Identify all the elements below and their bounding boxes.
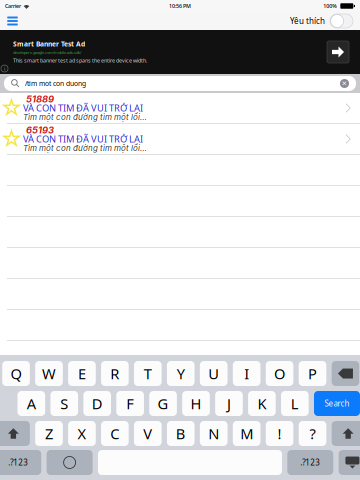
button[interactable]: Yêu thích bbox=[290, 12, 360, 30]
button[interactable]: Shift bbox=[332, 421, 360, 446]
staticText: J bbox=[227, 394, 231, 413]
staticText: Y bbox=[177, 364, 185, 383]
staticText: X bbox=[77, 424, 86, 443]
staticText: 51889 bbox=[26, 93, 54, 105]
button[interactable]: Q bbox=[2, 361, 30, 386]
button[interactable]: O bbox=[266, 361, 293, 386]
button[interactable]: ? bbox=[299, 421, 326, 446]
staticText: Carrier bbox=[5, 2, 21, 10]
staticText: O bbox=[274, 364, 285, 383]
staticText: T bbox=[144, 364, 152, 383]
button[interactable]: C bbox=[101, 421, 129, 446]
staticText: U bbox=[208, 364, 219, 383]
button[interactable]: Smart Banner Test Ad bbox=[0, 30, 360, 74]
button[interactable]: F bbox=[116, 391, 144, 416]
staticText: 100% bbox=[323, 2, 337, 10]
staticText: .?123 bbox=[300, 457, 320, 468]
staticText: F bbox=[126, 394, 134, 413]
button[interactable]: N bbox=[200, 421, 227, 446]
button[interactable]: V bbox=[134, 421, 162, 446]
staticText: W bbox=[42, 364, 56, 383]
staticText: N bbox=[208, 424, 219, 443]
button[interactable]: E bbox=[68, 361, 96, 386]
button[interactable]: B bbox=[167, 421, 195, 446]
staticText: P bbox=[308, 364, 317, 383]
staticText: Tìm một con đường tìm một lối… bbox=[23, 112, 147, 122]
staticText: Z bbox=[45, 424, 53, 443]
staticText: i bbox=[4, 65, 5, 72]
staticText: developers.google.com/mobile-ads-sdk/ bbox=[13, 50, 81, 55]
button[interactable]: J bbox=[215, 391, 243, 416]
staticText: I bbox=[244, 364, 249, 383]
staticText: 10:56 PM bbox=[169, 2, 191, 10]
button[interactable]: Next keyboard bbox=[47, 450, 93, 475]
staticText: D bbox=[92, 394, 103, 413]
staticText: ! bbox=[278, 424, 282, 443]
staticText: VÀ CON TIM ĐÃ VUI TRỞ LẠI bbox=[23, 102, 143, 114]
staticText: Tìm một con đường tìm một lối… bbox=[23, 143, 147, 153]
staticText: Search bbox=[324, 398, 349, 409]
staticText: 65193 bbox=[26, 124, 54, 136]
button[interactable]: .?123 bbox=[287, 450, 333, 475]
button[interactable]: D bbox=[83, 391, 111, 416]
staticText: L bbox=[291, 394, 299, 413]
button[interactable]: R bbox=[101, 361, 129, 386]
button[interactable]: M bbox=[233, 421, 260, 446]
button[interactable]: .?123 bbox=[0, 450, 41, 475]
button[interactable]: L bbox=[281, 391, 309, 416]
button[interactable]: Y bbox=[167, 361, 194, 386]
button[interactable]: ! bbox=[266, 421, 293, 446]
staticText: G bbox=[158, 394, 169, 413]
staticText: C bbox=[110, 424, 119, 443]
button[interactable]: Z bbox=[35, 421, 63, 446]
button[interactable]: P bbox=[299, 361, 326, 386]
button[interactable]: Menu bbox=[0, 12, 25, 30]
staticText: ✕ bbox=[341, 80, 347, 87]
button[interactable]: X bbox=[68, 421, 96, 446]
staticText: A bbox=[27, 394, 36, 413]
staticText: Smart Banner Test Ad bbox=[13, 40, 85, 48]
staticText: K bbox=[257, 394, 266, 413]
button[interactable]: Shift bbox=[0, 421, 30, 446]
button[interactable]: H bbox=[182, 391, 210, 416]
button[interactable]: Delete bbox=[332, 361, 359, 386]
staticText: V bbox=[143, 424, 152, 443]
button[interactable]: U bbox=[200, 361, 227, 386]
button[interactable]: Search bbox=[314, 391, 360, 416]
staticText: R bbox=[110, 364, 119, 383]
button[interactable]: I bbox=[233, 361, 260, 386]
button[interactable]: Clear search bbox=[340, 79, 349, 88]
button[interactable]: G bbox=[149, 391, 177, 416]
button[interactable]: Dismiss keyboard bbox=[339, 450, 360, 475]
button[interactable]: A bbox=[17, 391, 45, 416]
staticText: S bbox=[60, 394, 68, 413]
button[interactable]: 51889 bbox=[0, 93, 360, 124]
staticText: H bbox=[190, 394, 201, 413]
button[interactable]: S bbox=[50, 391, 78, 416]
staticText: B bbox=[176, 424, 186, 443]
staticText: E bbox=[78, 364, 86, 383]
button[interactable]: T bbox=[134, 361, 162, 386]
staticText: M bbox=[240, 424, 253, 443]
staticText: .?123 bbox=[8, 457, 28, 468]
button[interactable]: W bbox=[35, 361, 63, 386]
button[interactable]: K bbox=[248, 391, 276, 416]
staticText: VÀ CON TIM ĐÃ VUI TRỞ LẠI bbox=[23, 133, 143, 145]
button[interactable]: 65193 bbox=[0, 124, 360, 155]
staticText: This smart banner test ad spans the enti… bbox=[13, 57, 147, 64]
staticText: Q bbox=[11, 364, 22, 383]
staticText: Yêu thích bbox=[290, 16, 325, 26]
staticText: /tim mot con duong bbox=[25, 79, 86, 88]
staticText: ? bbox=[309, 424, 315, 443]
